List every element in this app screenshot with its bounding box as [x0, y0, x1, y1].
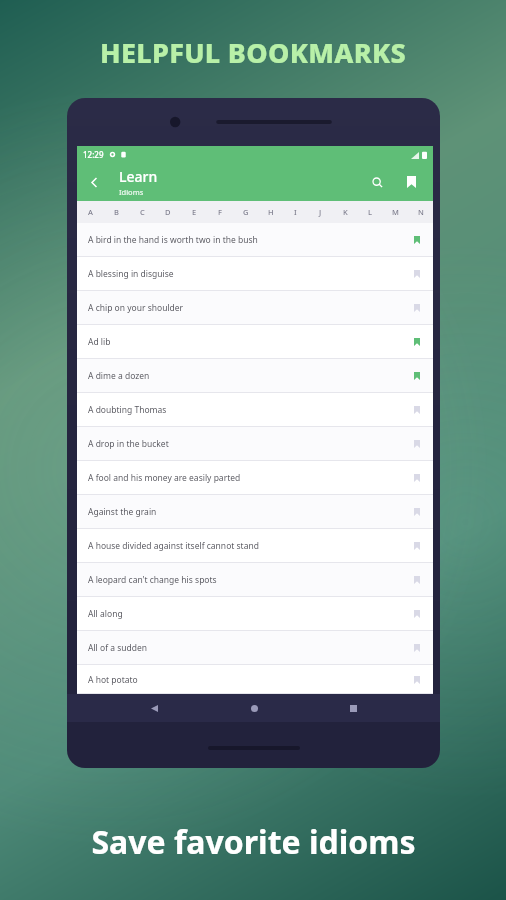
button[interactable]: G [233, 201, 258, 223]
staticText: M [392, 207, 399, 217]
staticText: 12:29 [83, 149, 104, 160]
button[interactable]: H [258, 201, 283, 223]
button[interactable]: Ad lib [77, 325, 433, 359]
staticText: N [418, 207, 424, 217]
button[interactable]: D [155, 201, 181, 223]
button[interactable]: J [308, 201, 333, 223]
staticText: A blessing in disguise [88, 268, 174, 280]
button[interactable]: All along [77, 597, 433, 631]
button[interactable]: A leopard can't change his spots [77, 563, 433, 597]
button[interactable]: Against the grain [77, 495, 433, 529]
staticText: A dime a dozen [88, 370, 150, 382]
button[interactable]: M [383, 201, 408, 223]
staticText: Against the grain [88, 506, 157, 518]
button[interactable]: A drop in the bucket [77, 427, 433, 461]
staticText: Idioms [119, 187, 144, 197]
button[interactable]: Home [241, 695, 267, 721]
staticText: All along [88, 608, 123, 620]
staticText: A bird in the hand is worth two in the b… [88, 234, 258, 246]
button[interactable]: A hot potato [77, 665, 433, 694]
button[interactable]: Back [83, 171, 105, 193]
staticText: J [319, 207, 322, 217]
staticText: C [140, 207, 145, 217]
staticText: E [192, 207, 197, 217]
staticText: A leopard can't change his spots [88, 574, 217, 586]
button[interactable]: A fool and his money are easily parted [77, 461, 433, 495]
staticText: A [88, 207, 93, 217]
button[interactable]: A dime a dozen [77, 359, 433, 393]
button[interactable]: K [333, 201, 358, 223]
button[interactable]: A doubting Thomas [77, 393, 433, 427]
button[interactable]: F [207, 201, 233, 223]
button[interactable]: A house divided against itself cannot st… [77, 529, 433, 563]
button[interactable]: A chip on your shoulder [77, 291, 433, 325]
button[interactable]: L [358, 201, 383, 223]
button[interactable]: Back [141, 695, 167, 721]
staticText: A doubting Thomas [88, 404, 167, 416]
button[interactable]: B [103, 201, 129, 223]
button[interactable]: Recent apps [340, 695, 366, 721]
button[interactable]: Search [365, 170, 389, 194]
staticText: K [343, 207, 348, 217]
staticText: D [165, 207, 171, 217]
button[interactable]: A [77, 201, 103, 223]
staticText: G [243, 207, 249, 217]
button[interactable]: N [408, 201, 433, 223]
staticText: B [114, 207, 119, 217]
button[interactable]: E [181, 201, 207, 223]
button[interactable]: A blessing in disguise [77, 257, 433, 291]
staticText: I [294, 207, 297, 217]
staticText: L [368, 207, 373, 217]
staticText: All of a sudden [88, 642, 148, 654]
staticText: Ad lib [88, 336, 111, 348]
staticText: A house divided against itself cannot st… [88, 540, 259, 552]
staticText: A drop in the bucket [88, 438, 169, 450]
button[interactable]: I [283, 201, 308, 223]
staticText: H [268, 207, 274, 217]
staticText: F [218, 207, 222, 217]
button[interactable]: Bookmarks [399, 170, 423, 194]
staticText: A chip on your shoulder [88, 302, 184, 314]
staticText: HELPFUL BOOKMARKS [100, 34, 406, 71]
button[interactable]: C [129, 201, 155, 223]
staticText: Learn [119, 167, 158, 186]
button[interactable]: All of a sudden [77, 631, 433, 665]
staticText: A hot potato [88, 674, 138, 686]
staticText: A fool and his money are easily parted [88, 472, 241, 484]
button[interactable]: A bird in the hand is worth two in the b… [77, 223, 433, 257]
staticText: Save favorite idioms [91, 820, 416, 864]
